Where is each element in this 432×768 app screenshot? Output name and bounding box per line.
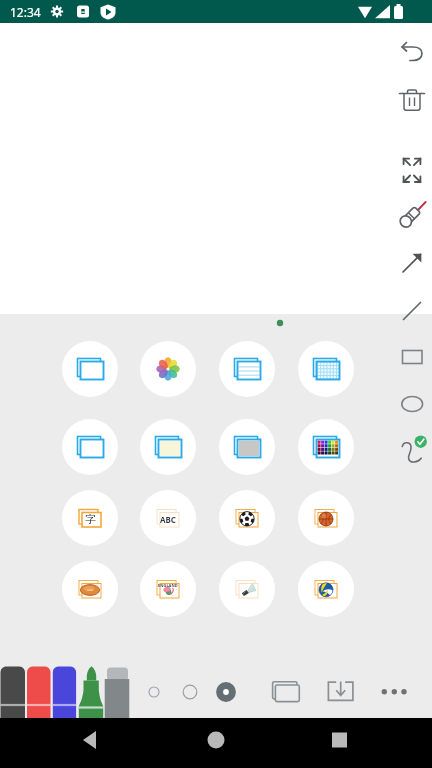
button[interactable]: Grid paper [298, 341, 354, 397]
button[interactable]: Football field [62, 561, 118, 617]
button[interactable]: Freehand curve [392, 430, 432, 470]
staticText: ENGLAND [158, 583, 178, 588]
button[interactable]: Chinese characters [62, 490, 118, 546]
button[interactable]: Line [392, 291, 432, 331]
button[interactable]: Stroke width 1 [138, 676, 170, 708]
button[interactable]: Stroke width 2 [174, 676, 206, 708]
button[interactable]: Stroke width 3 [210, 676, 242, 708]
button[interactable]: Delete [392, 80, 432, 120]
button[interactable]: Ellipse [392, 384, 432, 424]
staticText: ABC [160, 514, 176, 525]
button[interactable]: Arrow [392, 243, 432, 283]
button[interactable]: Gray page [219, 419, 275, 475]
button[interactable]: Blank whiteboard [62, 341, 118, 397]
button[interactable]: Rainbow palette [298, 419, 354, 475]
button[interactable]: More options [376, 676, 408, 708]
button[interactable]: Plain white [62, 419, 118, 475]
button[interactable]: Lined paper [219, 341, 275, 397]
button[interactable]: Basketball court [298, 490, 354, 546]
button[interactable]: Fullscreen [392, 149, 432, 189]
button[interactable]: Save [322, 676, 358, 712]
button[interactable]: Rectangle [392, 337, 432, 377]
button[interactable]: ABC letters [140, 490, 196, 546]
staticText: 字 [85, 512, 96, 526]
button[interactable]: Soccer field [219, 490, 275, 546]
button[interactable]: Highlighter pen [392, 196, 432, 236]
staticText: 12:34 [10, 4, 41, 20]
button[interactable]: Badminton court [219, 561, 275, 617]
button[interactable]: Volleyball court [298, 561, 354, 617]
button[interactable]: Undo [392, 32, 432, 72]
button[interactable]: Pages [268, 674, 306, 712]
button[interactable]: Ivory page [140, 419, 196, 475]
button[interactable]: Field map [140, 561, 196, 617]
button[interactable]: Color palette board [140, 341, 196, 397]
